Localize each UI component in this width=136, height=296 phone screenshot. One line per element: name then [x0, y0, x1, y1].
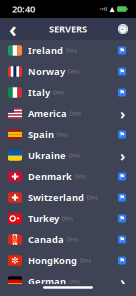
staticText: Oms: [68, 278, 80, 285]
staticText: Switzerland: [28, 191, 84, 204]
staticText: Denmark: [28, 170, 72, 183]
staticText: ▲: [109, 5, 114, 13]
button[interactable]: Ukraine: [0, 145, 136, 166]
staticText: ⚑: [119, 215, 125, 222]
button[interactable]: Ireland: [0, 40, 136, 61]
staticText: ›: [120, 272, 125, 291]
staticText: Oms: [79, 257, 91, 264]
staticText: Oms: [68, 152, 80, 159]
staticText: ⚑: [119, 257, 125, 264]
staticText: Oms: [65, 47, 77, 54]
staticText: Oms: [52, 89, 64, 96]
staticText: Oms: [67, 68, 79, 75]
button[interactable]: Denmark: [0, 166, 136, 187]
staticText: Turkey: [28, 212, 59, 225]
staticText: ⚑: [119, 68, 125, 75]
staticText: ⚑: [119, 131, 125, 138]
staticText: Canada: [28, 233, 64, 246]
staticText: ›: [120, 104, 125, 123]
button[interactable]: America: [0, 103, 136, 124]
staticText: Spain: [28, 128, 54, 141]
button[interactable]: ✼: [0, 250, 136, 271]
staticText: ⚑: [119, 173, 125, 180]
button[interactable]: Switzerland: [0, 187, 136, 208]
staticText: ›: [120, 146, 125, 165]
staticText: ⚑: [119, 89, 125, 96]
button[interactable]: Norway: [0, 61, 136, 82]
staticText: Oms: [69, 110, 81, 117]
staticText: Oms: [61, 215, 73, 222]
staticText: Norway: [28, 65, 65, 78]
staticText: Oms: [86, 194, 98, 201]
staticText: Ukraine: [28, 149, 66, 162]
button[interactable]: Back: [0, 18, 26, 40]
button[interactable]: History: [110, 18, 136, 40]
button[interactable]: German: [0, 271, 136, 292]
staticText: German: [28, 275, 66, 288]
staticText: ✦: [16, 215, 20, 222]
staticText: Ireland: [28, 44, 63, 57]
staticText: Oms: [56, 131, 68, 138]
staticText: ⚑: [119, 236, 125, 243]
staticText: Oms: [74, 173, 86, 180]
staticText: 20:40: [12, 3, 35, 15]
staticText: ⚑: [119, 47, 125, 54]
staticText: Italy: [28, 86, 50, 99]
button[interactable]: ✦: [0, 208, 136, 229]
staticText: ⚑: [119, 194, 125, 201]
staticText: SERVERS: [49, 23, 87, 35]
button[interactable]: 🍁: [0, 229, 136, 250]
button[interactable]: Spain: [0, 124, 136, 145]
staticText: ✼: [11, 255, 19, 266]
staticText: HongKong: [28, 254, 77, 267]
button[interactable]: Italy: [0, 82, 136, 103]
staticText: America: [28, 107, 67, 120]
staticText: 🍁: [9, 234, 21, 245]
staticText: ‹: [9, 15, 17, 43]
staticText: 🕘: [118, 24, 128, 33]
staticText: Oms: [66, 236, 78, 243]
